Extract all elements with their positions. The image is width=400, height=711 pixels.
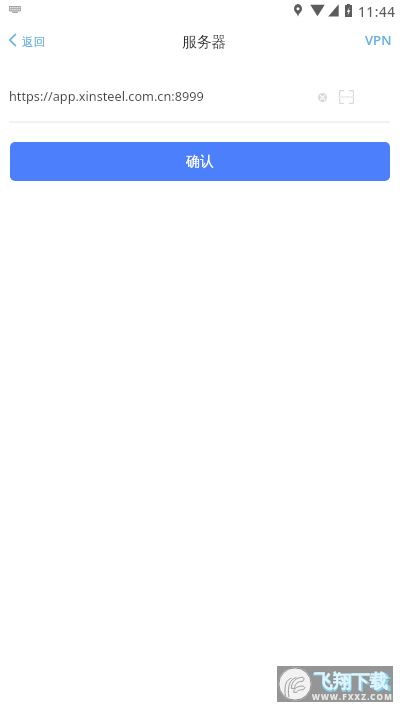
staticText: 返回 [22,35,46,50]
button[interactable]: 确认 [10,142,390,181]
button[interactable]: VPN [353,27,400,53]
staticText: https://app.xinsteel.com.cn:8999 [9,87,204,104]
staticText: 11:44 [358,3,396,21]
button[interactable]: Scan QR code [329,80,364,114]
button[interactable]: Clear [308,81,337,114]
staticText: VPN [365,31,392,49]
staticText: 确认 [186,153,214,171]
button[interactable]: 返回 [0,28,56,51]
staticText: 飞翔下载 [314,670,388,693]
staticText: 服务器 [182,33,227,52]
staticText: WWW.FXXZ.COM [312,691,394,702]
staticText: 飞翔下载 [313,670,391,695]
